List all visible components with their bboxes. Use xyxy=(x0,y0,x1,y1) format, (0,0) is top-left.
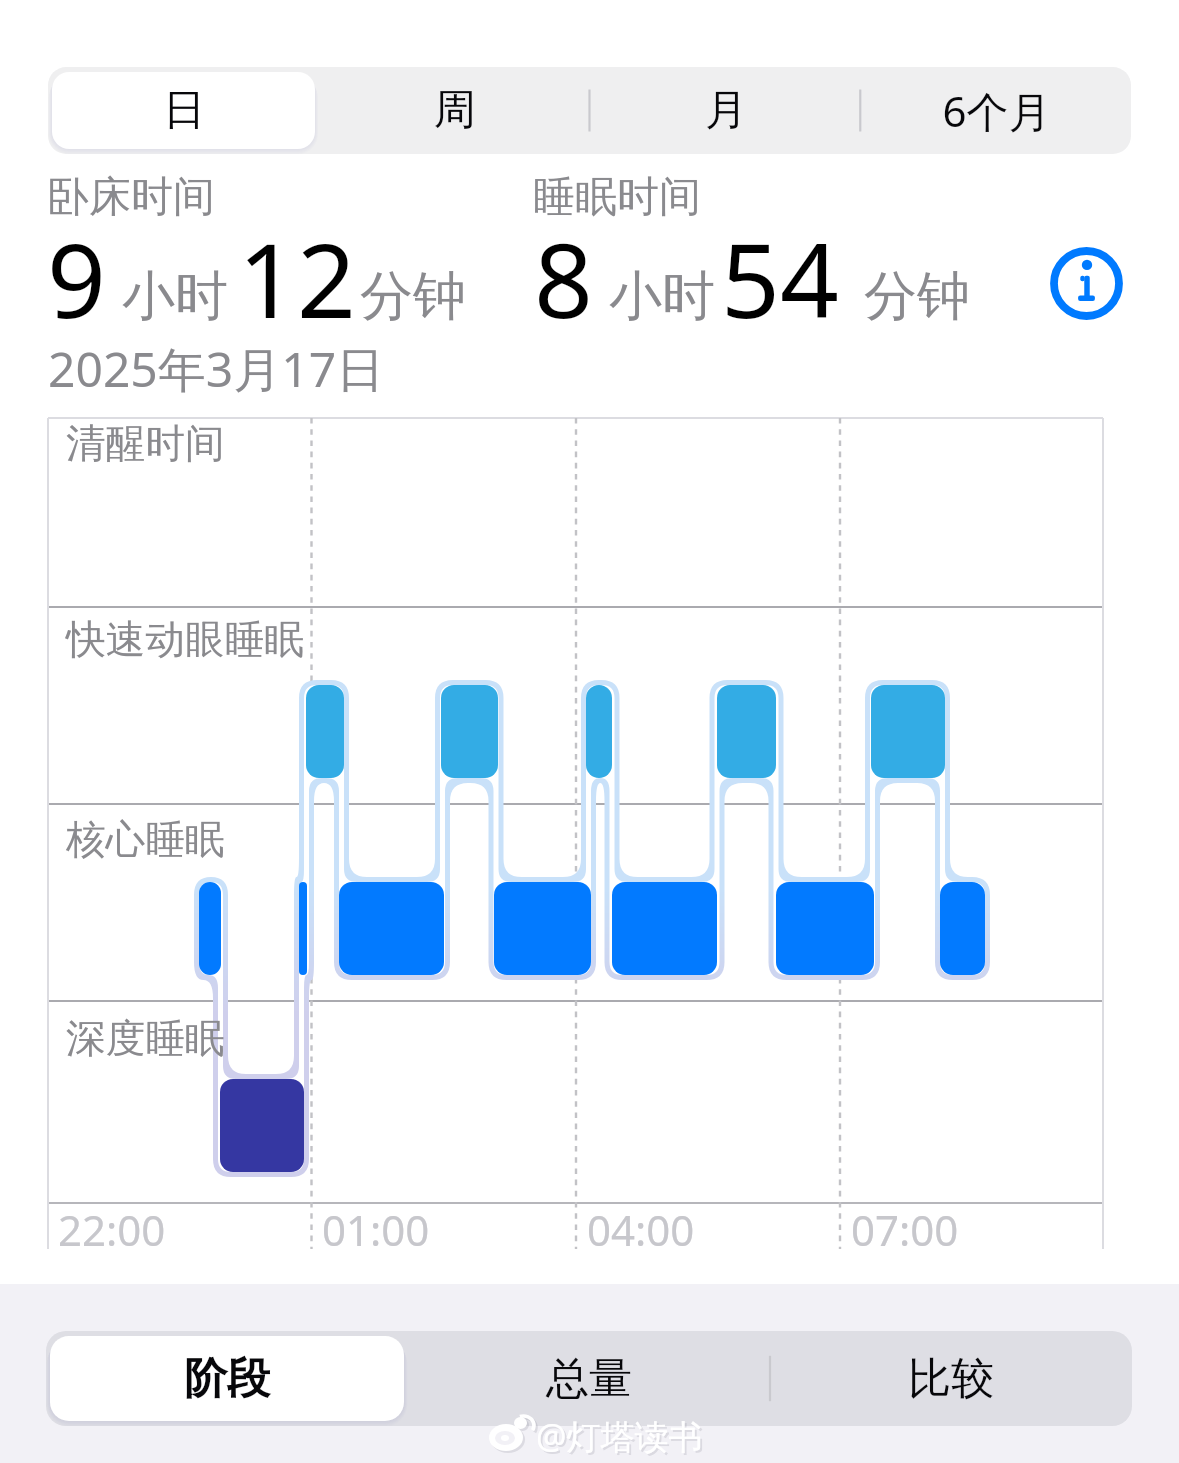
staticText: 04:00 xyxy=(587,1201,695,1258)
staticText: 清醒时间 xyxy=(66,419,225,469)
staticText: 54 xyxy=(721,208,839,348)
button[interactable]: 比较 xyxy=(770,1331,1132,1426)
staticText: 9 xyxy=(47,208,106,348)
staticText: 分钟 xyxy=(864,263,970,330)
staticText: 小时 xyxy=(609,263,715,330)
button[interactable]: 日 xyxy=(48,67,319,154)
staticText: 比较 xyxy=(908,1352,994,1406)
button[interactable]: 阶段 xyxy=(46,1331,408,1426)
staticText: 01:00 xyxy=(322,1201,430,1258)
staticText: 总量 xyxy=(546,1352,632,1406)
button[interactable]: 周 xyxy=(319,67,590,154)
staticText: 6个月 xyxy=(942,82,1051,139)
button[interactable]: 月 xyxy=(590,67,861,154)
staticText: 核心睡眠 xyxy=(66,815,225,865)
button[interactable]: 6个月 xyxy=(861,67,1131,154)
staticText: 月 xyxy=(705,84,747,137)
staticText: 阶段 xyxy=(184,1352,270,1406)
staticText: 快速动眼睡眠 xyxy=(66,615,305,665)
staticText: @灯塔读书 xyxy=(536,1413,703,1459)
staticText: 卧床时间 xyxy=(47,171,215,224)
staticText: 分钟 xyxy=(360,263,466,330)
button[interactable]: 总量 xyxy=(408,1331,770,1426)
staticText: 深度睡眠 xyxy=(66,1014,225,1064)
staticText: @灯塔读书 xyxy=(538,1415,705,1461)
staticText: 22:00 xyxy=(58,1201,166,1258)
staticText: 睡眠时间 xyxy=(533,171,701,224)
staticText: 2025年3月17日 xyxy=(48,336,385,402)
staticText: 周 xyxy=(434,84,476,137)
staticText: 8 xyxy=(534,208,593,348)
staticText: 12 xyxy=(238,208,356,348)
staticText: 日 xyxy=(163,84,205,137)
staticText: 07:00 xyxy=(851,1201,959,1258)
button[interactable]: More information xyxy=(1050,247,1123,320)
staticText: 小时 xyxy=(122,263,228,330)
